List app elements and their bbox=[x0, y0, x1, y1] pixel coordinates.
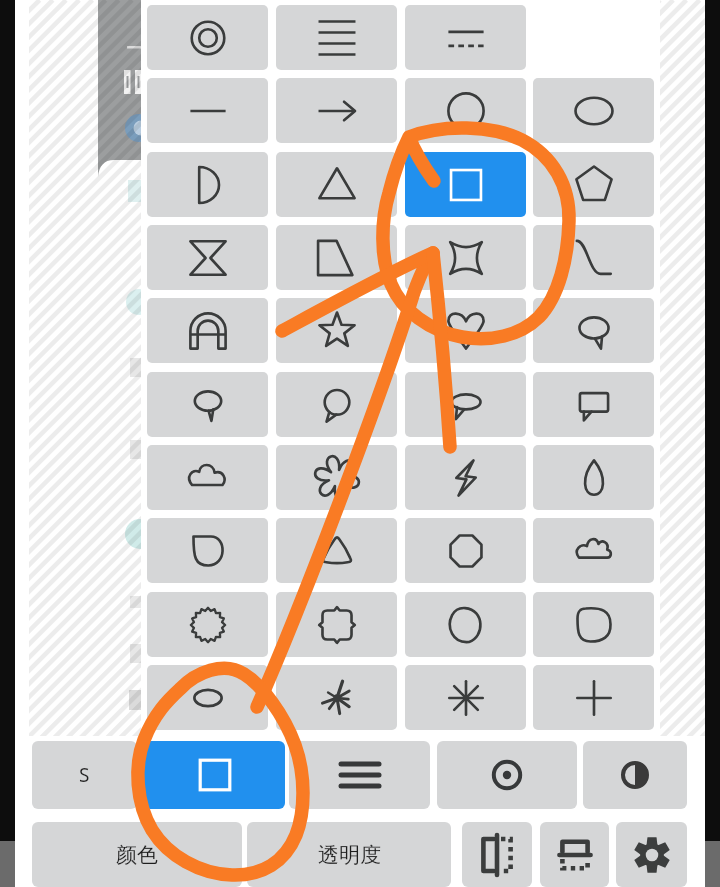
button[interactable]: Flip horizontal bbox=[462, 822, 532, 887]
button[interactable]: Shape 17 bbox=[405, 298, 526, 363]
button[interactable]: Shape 15 bbox=[147, 298, 268, 363]
button[interactable]: Shape 22 bbox=[533, 372, 654, 437]
button[interactable]: Style bbox=[32, 741, 137, 809]
button[interactable]: Shape 33 bbox=[405, 592, 526, 657]
button[interactable]: Shape 23 bbox=[147, 445, 268, 510]
button[interactable]: Shape 6 bbox=[533, 78, 654, 143]
staticText: 透明度 bbox=[318, 842, 381, 868]
button[interactable]: Shape 4 bbox=[276, 78, 397, 143]
button[interactable]: Shape 29 bbox=[405, 518, 526, 583]
button[interactable]: Shape 9 bbox=[405, 152, 526, 217]
button[interactable]: Shape 28 bbox=[276, 518, 397, 583]
button[interactable]: Shape bbox=[144, 741, 285, 809]
button[interactable]: Shape 27 bbox=[147, 518, 268, 583]
button[interactable]: Shape 37 bbox=[405, 665, 526, 730]
button[interactable]: Shape 1 bbox=[276, 5, 397, 70]
button[interactable]: Shape 35 bbox=[147, 665, 268, 730]
button[interactable]: Contrast bbox=[583, 741, 687, 809]
button[interactable]: Shape 11 bbox=[147, 225, 268, 290]
button[interactable]: Shape 8 bbox=[276, 152, 397, 217]
button[interactable]: Shape 25 bbox=[405, 445, 526, 510]
button[interactable]: Shape 5 bbox=[405, 78, 526, 143]
button[interactable]: Shape 32 bbox=[276, 592, 397, 657]
button[interactable]: Shape 18 bbox=[533, 298, 654, 363]
button[interactable]: Shape 16 bbox=[276, 298, 397, 363]
button[interactable]: Shape 24 bbox=[276, 445, 397, 510]
button[interactable]: Shape 30 bbox=[533, 518, 654, 583]
button[interactable]: Shape 20 bbox=[276, 372, 397, 437]
button[interactable]: Shape 26 bbox=[533, 445, 654, 510]
button[interactable]: Flip vertical bbox=[540, 822, 609, 887]
button[interactable]: Color bbox=[32, 822, 242, 887]
staticText: 颜色 bbox=[116, 842, 158, 868]
button[interactable]: Shape 3 bbox=[147, 78, 268, 143]
button[interactable]: Shape 12 bbox=[276, 225, 397, 290]
button[interactable]: Settings bbox=[616, 822, 687, 887]
button[interactable]: Shape 0 bbox=[147, 5, 268, 70]
button[interactable]: Shape 13 bbox=[405, 225, 526, 290]
button[interactable]: Shape 7 bbox=[147, 152, 268, 217]
button[interactable]: Shape 10 bbox=[533, 152, 654, 217]
button[interactable]: Shape 38 bbox=[533, 665, 654, 730]
button[interactable]: Shape 36 bbox=[276, 665, 397, 730]
button[interactable]: Point bbox=[437, 741, 577, 809]
button[interactable]: Opacity bbox=[247, 822, 451, 887]
button[interactable]: Shape 34 bbox=[533, 592, 654, 657]
button[interactable]: Shape 2 bbox=[405, 5, 526, 70]
button[interactable]: Shape 19 bbox=[147, 372, 268, 437]
button[interactable]: Shape 14 bbox=[533, 225, 654, 290]
button[interactable]: Shape 21 bbox=[405, 372, 526, 437]
staticText: S bbox=[79, 762, 90, 788]
button[interactable]: Lines bbox=[289, 741, 430, 809]
button[interactable]: Shape 31 bbox=[147, 592, 268, 657]
